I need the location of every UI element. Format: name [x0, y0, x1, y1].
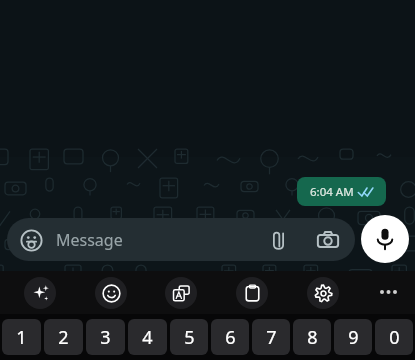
button[interactable]: Attach — [263, 225, 293, 255]
button[interactable]: Assistant — [24, 277, 56, 309]
button[interactable]: 9 — [334, 319, 372, 355]
staticText: 3 — [100, 325, 111, 350]
button[interactable]: Emoji — [95, 277, 127, 309]
staticText: 1 — [16, 325, 27, 350]
button[interactable]: Stickers — [16, 225, 46, 255]
button[interactable]: 6 — [211, 319, 249, 355]
button[interactable]: Translate — [165, 277, 197, 309]
staticText: 9 — [348, 325, 359, 350]
button[interactable]: More options — [373, 277, 403, 307]
staticText: 0 — [389, 325, 400, 350]
button[interactable]: 5 — [170, 319, 208, 355]
button[interactable]: Camera — [313, 225, 343, 255]
button[interactable]: 7 — [252, 319, 290, 355]
button[interactable]: Stickers — [7, 218, 355, 261]
button[interactable]: 4 — [128, 319, 167, 355]
staticText: 6:04 AM — [310, 184, 354, 200]
button[interactable]: 6:04 AM — [297, 177, 386, 206]
button[interactable]: Clipboard — [236, 277, 268, 309]
staticText: 5 — [184, 325, 195, 350]
button[interactable]: 0 — [375, 319, 413, 355]
button[interactable]: 8 — [293, 319, 331, 355]
button[interactable]: 3 — [86, 319, 125, 355]
staticText: 2 — [58, 325, 69, 350]
staticText: Message — [56, 229, 123, 251]
staticText: 8 — [307, 325, 318, 350]
staticText: 4 — [142, 325, 153, 350]
staticText: 6 — [225, 325, 236, 350]
button[interactable]: 1 — [2, 319, 41, 355]
staticText: 7 — [266, 325, 277, 350]
button[interactable]: Settings — [307, 277, 339, 309]
button[interactable]: Record voice message — [361, 215, 409, 263]
button[interactable]: 2 — [44, 319, 83, 355]
